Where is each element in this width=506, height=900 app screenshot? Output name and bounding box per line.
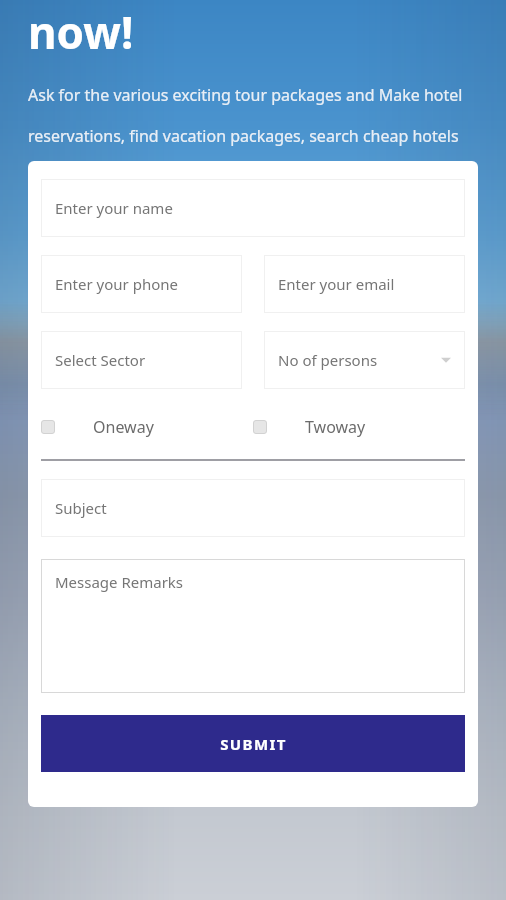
staticText: Enter your phone bbox=[55, 274, 178, 294]
button[interactable]: Enter your phone bbox=[41, 255, 242, 313]
button[interactable]: Message Remarks bbox=[41, 559, 465, 693]
staticText: now! bbox=[28, 2, 134, 62]
button[interactable]: Enter your name bbox=[41, 179, 465, 237]
staticText: Message Remarks bbox=[55, 572, 184, 592]
button[interactable]: Enter your email bbox=[264, 255, 465, 313]
staticText: Twoway bbox=[305, 416, 366, 438]
button[interactable]: SUBMIT bbox=[41, 715, 465, 772]
staticText: Enter your name bbox=[55, 198, 173, 218]
button[interactable]: Subject bbox=[41, 479, 465, 537]
button[interactable]: Select Sector bbox=[41, 331, 242, 389]
staticText: SUBMIT bbox=[220, 734, 287, 754]
staticText: Ask for the various exciting tour packag… bbox=[28, 84, 470, 147]
staticText: Subject bbox=[55, 498, 107, 518]
button[interactable]: Oneway bbox=[41, 416, 253, 438]
staticText: Oneway bbox=[93, 416, 154, 438]
staticText: Select Sector bbox=[55, 350, 146, 370]
button[interactable]: No of persons bbox=[264, 331, 465, 389]
staticText: Enter your email bbox=[278, 274, 395, 294]
button[interactable]: Twoway bbox=[253, 416, 465, 438]
staticText: No of persons bbox=[278, 350, 378, 370]
